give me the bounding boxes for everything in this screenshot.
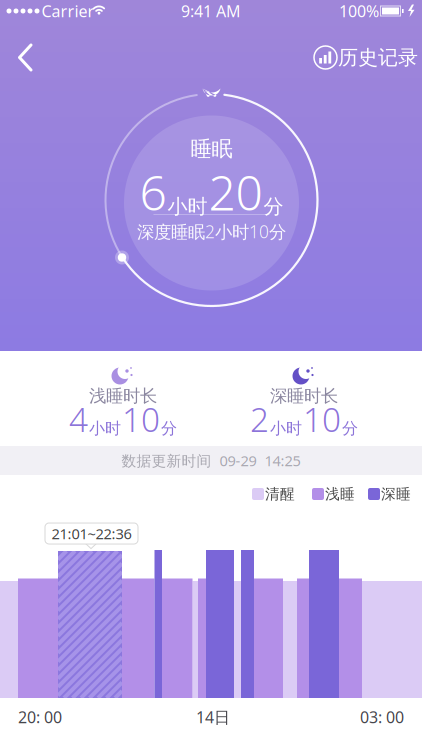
staticText: 小时 [270, 418, 302, 438]
staticText: 03: 00 [360, 706, 404, 728]
staticText: 浅睡 [325, 485, 355, 503]
staticText: 9:41 AM [181, 0, 241, 22]
staticText: 10 [303, 397, 341, 441]
staticText: 历史记录 [338, 45, 418, 70]
button[interactable]: 历史记录 [314, 46, 412, 69]
staticText: 浅睡时长 [89, 385, 157, 407]
staticText: 数据更新时间 09-29 14:25 [121, 451, 300, 470]
staticText: 清醒 [265, 485, 295, 503]
staticText: 小时 [167, 194, 207, 219]
staticText: 20: 00 [18, 706, 62, 728]
staticText: 深睡时长 [270, 385, 338, 407]
staticText: 分 [342, 418, 358, 438]
staticText: Carrier [41, 0, 94, 22]
staticText: 21:01~22:36 [51, 524, 131, 543]
staticText: 6 [139, 160, 166, 224]
button[interactable]: Back [12, 38, 46, 78]
staticText: 小时 [89, 418, 121, 438]
staticText: 20 [208, 160, 262, 224]
staticText: 睡眠 [190, 136, 232, 162]
staticText: 10 [122, 397, 160, 441]
staticText: 分 [263, 194, 283, 219]
staticText: 深睡 [381, 485, 411, 503]
staticText: 100% [339, 0, 379, 22]
staticText: 深度睡眠2小时10分 [137, 220, 286, 243]
staticText: 14日 [196, 706, 230, 728]
staticText: 2 [250, 397, 269, 441]
staticText: 4 [69, 397, 88, 441]
staticText: 分 [161, 418, 177, 438]
